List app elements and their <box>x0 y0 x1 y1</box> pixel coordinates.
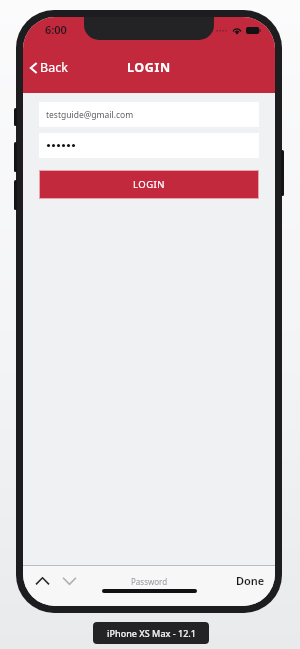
staticText: LOGIN <box>133 178 166 191</box>
button[interactable] <box>39 133 259 158</box>
staticText: iPhone XS Max - 12.1 <box>107 627 196 639</box>
button[interactable]: Back <box>23 53 78 82</box>
staticText: Done <box>236 573 265 588</box>
button[interactable]: Done <box>226 569 275 592</box>
button[interactable]: testguide@gmail.com <box>39 102 259 127</box>
staticText: LOGIN <box>127 59 171 76</box>
button[interactable]: LOGIN <box>39 170 259 199</box>
staticText: Password <box>131 576 168 587</box>
button[interactable]: Next field <box>58 570 80 592</box>
staticText: 6:00 <box>45 22 67 37</box>
staticText: Back <box>40 59 68 76</box>
staticText: testguide@gmail.com <box>46 109 134 121</box>
button[interactable]: Previous field <box>31 570 53 592</box>
